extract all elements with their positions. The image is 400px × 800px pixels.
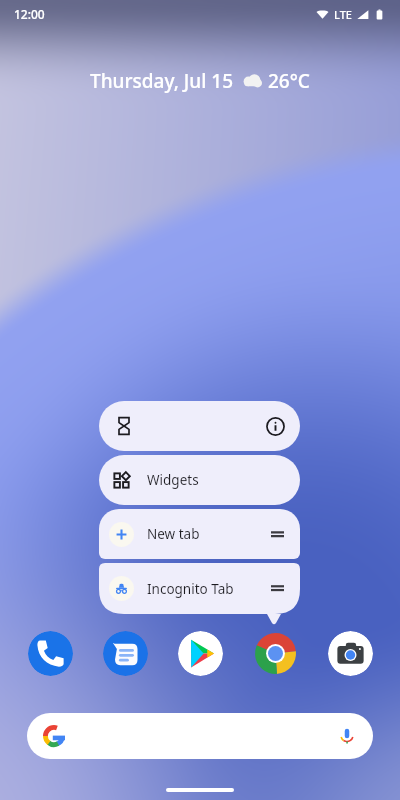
staticText: Widgets (147, 471, 199, 489)
button[interactable]: Play Store (178, 631, 223, 676)
button[interactable] (27, 713, 373, 759)
button[interactable]: Incognito Tab (99, 563, 300, 614)
button[interactable]: Widgets (99, 455, 300, 505)
button[interactable]: Chrome (253, 631, 298, 676)
staticText: 26°C (268, 68, 310, 94)
button[interactable]: Messages (103, 631, 148, 676)
button[interactable] (99, 401, 300, 451)
staticText: New tab (147, 525, 200, 543)
staticText: Thursday, Jul 15 (90, 68, 234, 94)
staticText: 12:00 (14, 6, 45, 22)
staticText: LTE (334, 7, 352, 22)
button[interactable]: Phone (28, 631, 73, 676)
staticText: Incognito Tab (147, 580, 234, 598)
button[interactable]: Camera (328, 631, 373, 676)
button[interactable]: New tab (99, 509, 300, 559)
